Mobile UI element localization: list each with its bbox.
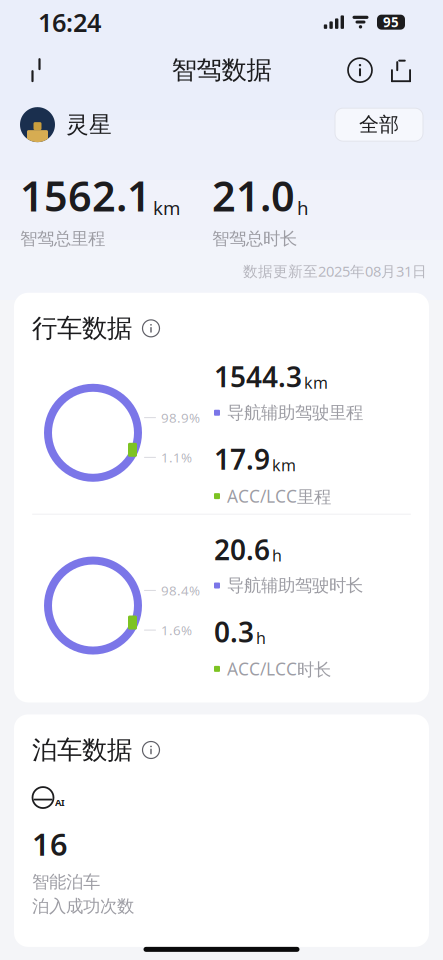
staticText: 95 [383, 13, 399, 31]
staticText: 1.1% [161, 448, 192, 466]
staticText: 1544.3 [214, 358, 302, 395]
staticText: 智驾数据 [171, 55, 271, 86]
staticText: 行车数据 [32, 313, 132, 344]
staticText: 21.0 [212, 168, 295, 223]
staticText: h [297, 195, 309, 220]
staticText: 泊入成功次数 [32, 896, 134, 917]
staticText: h [272, 545, 282, 566]
staticText: 1.6% [161, 621, 192, 639]
button[interactable]: 分享 [381, 48, 421, 92]
button[interactable]: 行车数据说明 [139, 316, 163, 340]
staticText: 0.3 [214, 613, 254, 650]
staticText: 智驾总时长 [212, 228, 297, 249]
button[interactable]: 信息 [339, 48, 381, 92]
staticText: km [272, 454, 296, 475]
staticText: AI [55, 796, 65, 809]
button[interactable]: 返回 [22, 48, 50, 92]
staticText: 数据更新至2025年08月31日 [243, 261, 427, 281]
staticText: 导航辅助驾驶时长 [227, 575, 363, 596]
staticText: 98.4% [161, 582, 200, 599]
staticText: 98.9% [161, 409, 200, 426]
button[interactable]: 泊车数据说明 [139, 738, 163, 762]
staticText: km [153, 195, 180, 220]
staticText: 智能泊车 [32, 871, 100, 893]
button[interactable]: 全部 [335, 108, 423, 141]
staticText: ACC/LCC里程 [227, 485, 331, 508]
staticText: 全部 [359, 112, 399, 137]
staticText: 16:24 [38, 5, 101, 39]
staticText: km [304, 372, 328, 393]
staticText: ACC/LCC时长 [227, 657, 331, 680]
staticText: 泊车数据 [32, 734, 132, 765]
staticText: 16 [32, 824, 68, 864]
staticText: 导航辅助驾驶里程 [227, 402, 363, 423]
staticText: 灵星 [66, 111, 112, 138]
staticText: 17.9 [214, 440, 270, 478]
staticText: 20.6 [214, 531, 270, 568]
staticText: 智驾总里程 [20, 228, 105, 249]
staticText: h [256, 627, 266, 648]
staticText: 1562.1 [20, 168, 151, 223]
